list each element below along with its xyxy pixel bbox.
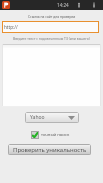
button[interactable] <box>2 44 101 107</box>
staticText: Введите текст с подсвеченным ТЗ (или ваш… <box>13 36 90 41</box>
button[interactable]: http:// <box>2 21 99 33</box>
button[interactable]: Проверить уникальность <box>8 144 91 155</box>
button[interactable]: точный поиск <box>31 130 103 139</box>
staticText: 14:24 <box>57 2 69 8</box>
staticText: Ссылка на сайт для проверки <box>28 14 76 18</box>
staticText: Проверить уникальность <box>13 146 87 154</box>
staticText: Yahoo <box>30 114 45 121</box>
staticText: http:// <box>4 24 18 30</box>
button[interactable]: Yahoo <box>25 112 79 123</box>
staticText: точный поиск <box>41 132 70 138</box>
